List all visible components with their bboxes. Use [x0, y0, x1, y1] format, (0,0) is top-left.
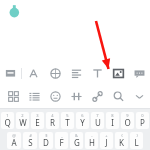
staticText: 8: [111, 113, 114, 118]
staticText: 4: [51, 113, 54, 118]
staticText: F: [59, 137, 64, 148]
button[interactable]: Collapse: [129, 85, 150, 108]
button[interactable]: Theme: [44, 62, 66, 85]
button[interactable]: 0: [136, 112, 149, 129]
button[interactable]: 6: [76, 112, 89, 129]
staticText: W: [19, 117, 27, 128]
staticText: P: [140, 117, 145, 128]
button[interactable]: 5: [61, 112, 74, 129]
staticText: 6: [81, 113, 84, 118]
staticText: G: [74, 137, 80, 148]
staticText: 7: [96, 113, 99, 118]
staticText: 9: [126, 113, 129, 118]
staticText: ): [136, 133, 138, 138]
button[interactable]: _: [55, 132, 68, 149]
button[interactable]: ): [130, 132, 143, 149]
staticText: L: [134, 137, 139, 148]
staticText: 3: [36, 113, 39, 118]
staticText: U: [95, 117, 101, 128]
staticText: &: [75, 133, 78, 138]
staticText: O: [124, 117, 131, 128]
button[interactable]: Insert image: [108, 62, 129, 85]
button[interactable]: $: [39, 132, 53, 149]
staticText: E: [35, 117, 40, 128]
button[interactable]: +: [100, 132, 113, 149]
staticText: Y: [80, 117, 85, 128]
staticText: R: [50, 117, 55, 128]
button[interactable]: List: [24, 85, 45, 108]
button[interactable]: -: [85, 132, 98, 149]
staticText: 2: [21, 113, 24, 118]
staticText: _: [61, 133, 63, 138]
staticText: 1: [6, 113, 9, 118]
button[interactable]: Text style: [22, 62, 44, 85]
button[interactable]: 4: [46, 112, 59, 129]
button[interactable]: Search: [108, 85, 129, 108]
button[interactable]: Paragraph: [66, 62, 87, 85]
button[interactable]: Emoji: [45, 85, 66, 108]
button[interactable]: Attach: [87, 85, 108, 108]
staticText: Q: [4, 117, 11, 128]
button[interactable]: &: [70, 132, 83, 149]
staticText: D: [43, 137, 49, 148]
staticText: -: [91, 133, 93, 138]
button[interactable]: @: [7, 132, 21, 149]
button[interactable]: Keyboard: [0, 62, 21, 85]
staticText: S: [28, 137, 33, 148]
button[interactable]: 1: [1, 112, 14, 129]
button[interactable]: Adjust: [66, 85, 87, 108]
button[interactable]: 2: [16, 112, 29, 129]
staticText: A: [11, 137, 17, 148]
button[interactable]: Grid: [3, 85, 24, 108]
button[interactable]: 8: [106, 112, 119, 129]
button[interactable]: 9: [121, 112, 134, 129]
staticText: +: [105, 133, 108, 138]
staticText: 5: [66, 113, 69, 118]
staticText: $: [45, 133, 48, 138]
button[interactable]: (: [115, 132, 128, 149]
button[interactable]: 7: [91, 112, 104, 129]
staticText: @: [12, 133, 16, 138]
button[interactable]: Text: [87, 62, 108, 85]
staticText: T: [65, 117, 70, 128]
button[interactable]: Comment: [129, 62, 150, 85]
staticText: J: [105, 137, 108, 148]
staticText: H: [89, 137, 95, 148]
button[interactable]: #: [23, 132, 37, 149]
staticText: (: [121, 133, 123, 138]
staticText: 0: [141, 113, 144, 118]
button[interactable]: 3: [31, 112, 44, 129]
staticText: K: [119, 137, 124, 148]
staticText: I: [111, 117, 114, 128]
staticText: #: [29, 133, 32, 138]
